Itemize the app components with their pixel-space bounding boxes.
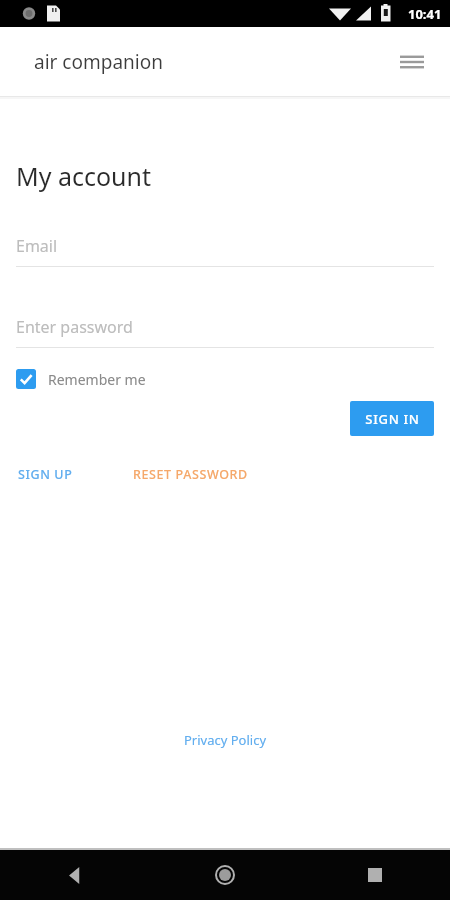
staticText: Remember me [48, 370, 146, 389]
button[interactable]: Email [0, 233, 450, 267]
button[interactable]: RESET PASSWORD [131, 462, 250, 487]
button[interactable]: SIGN UP [16, 462, 75, 487]
staticText: Privacy Policy [184, 731, 267, 749]
staticText: My account [16, 159, 152, 193]
button[interactable]: Recent apps [300, 850, 450, 900]
button[interactable]: Back [0, 850, 150, 900]
staticText: air companion [34, 49, 163, 75]
button[interactable]: Home [150, 850, 300, 900]
staticText: SIGN UP [18, 466, 73, 483]
staticText: Enter password [16, 316, 133, 338]
staticText: Email [16, 235, 58, 257]
staticText: SIGN IN [365, 410, 420, 428]
button[interactable]: SIGN IN [350, 401, 434, 436]
button[interactable]: Privacy Policy [178, 727, 273, 753]
staticText: 10:41 [408, 5, 442, 23]
button[interactable]: Enter password [0, 314, 450, 348]
button[interactable]: Open menu [394, 44, 430, 80]
staticText: RESET PASSWORD [133, 466, 248, 483]
button[interactable]: Remember me [16, 365, 146, 393]
